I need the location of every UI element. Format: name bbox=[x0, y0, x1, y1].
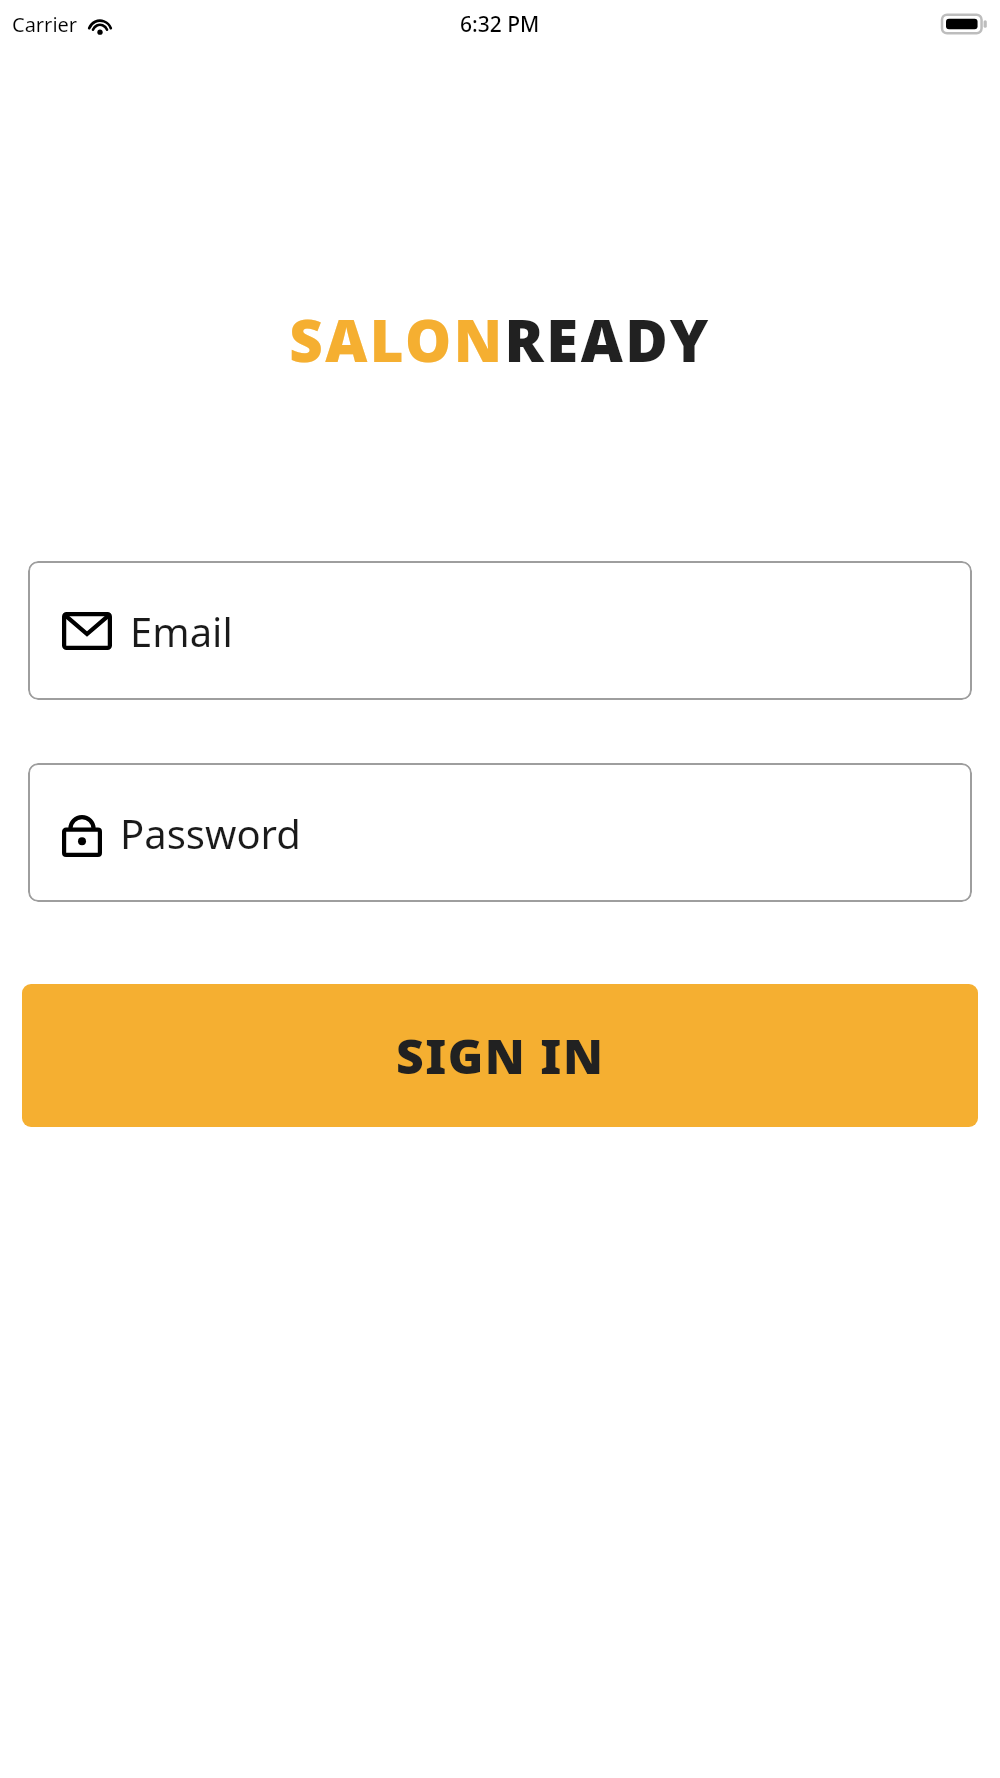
button[interactable]: Password bbox=[28, 763, 972, 902]
staticText: Carrier bbox=[12, 11, 78, 38]
staticText: SALONREADY bbox=[289, 300, 711, 379]
other: Password bbox=[62, 809, 102, 857]
staticText: Password bbox=[120, 806, 301, 860]
staticText: 6:32 PM bbox=[460, 10, 540, 39]
staticText: SIGN IN bbox=[396, 1023, 605, 1088]
button[interactable]: SIGN IN bbox=[22, 984, 978, 1127]
staticText: Email bbox=[130, 604, 233, 658]
other: Email bbox=[62, 612, 112, 650]
button[interactable]: Email bbox=[28, 561, 972, 700]
